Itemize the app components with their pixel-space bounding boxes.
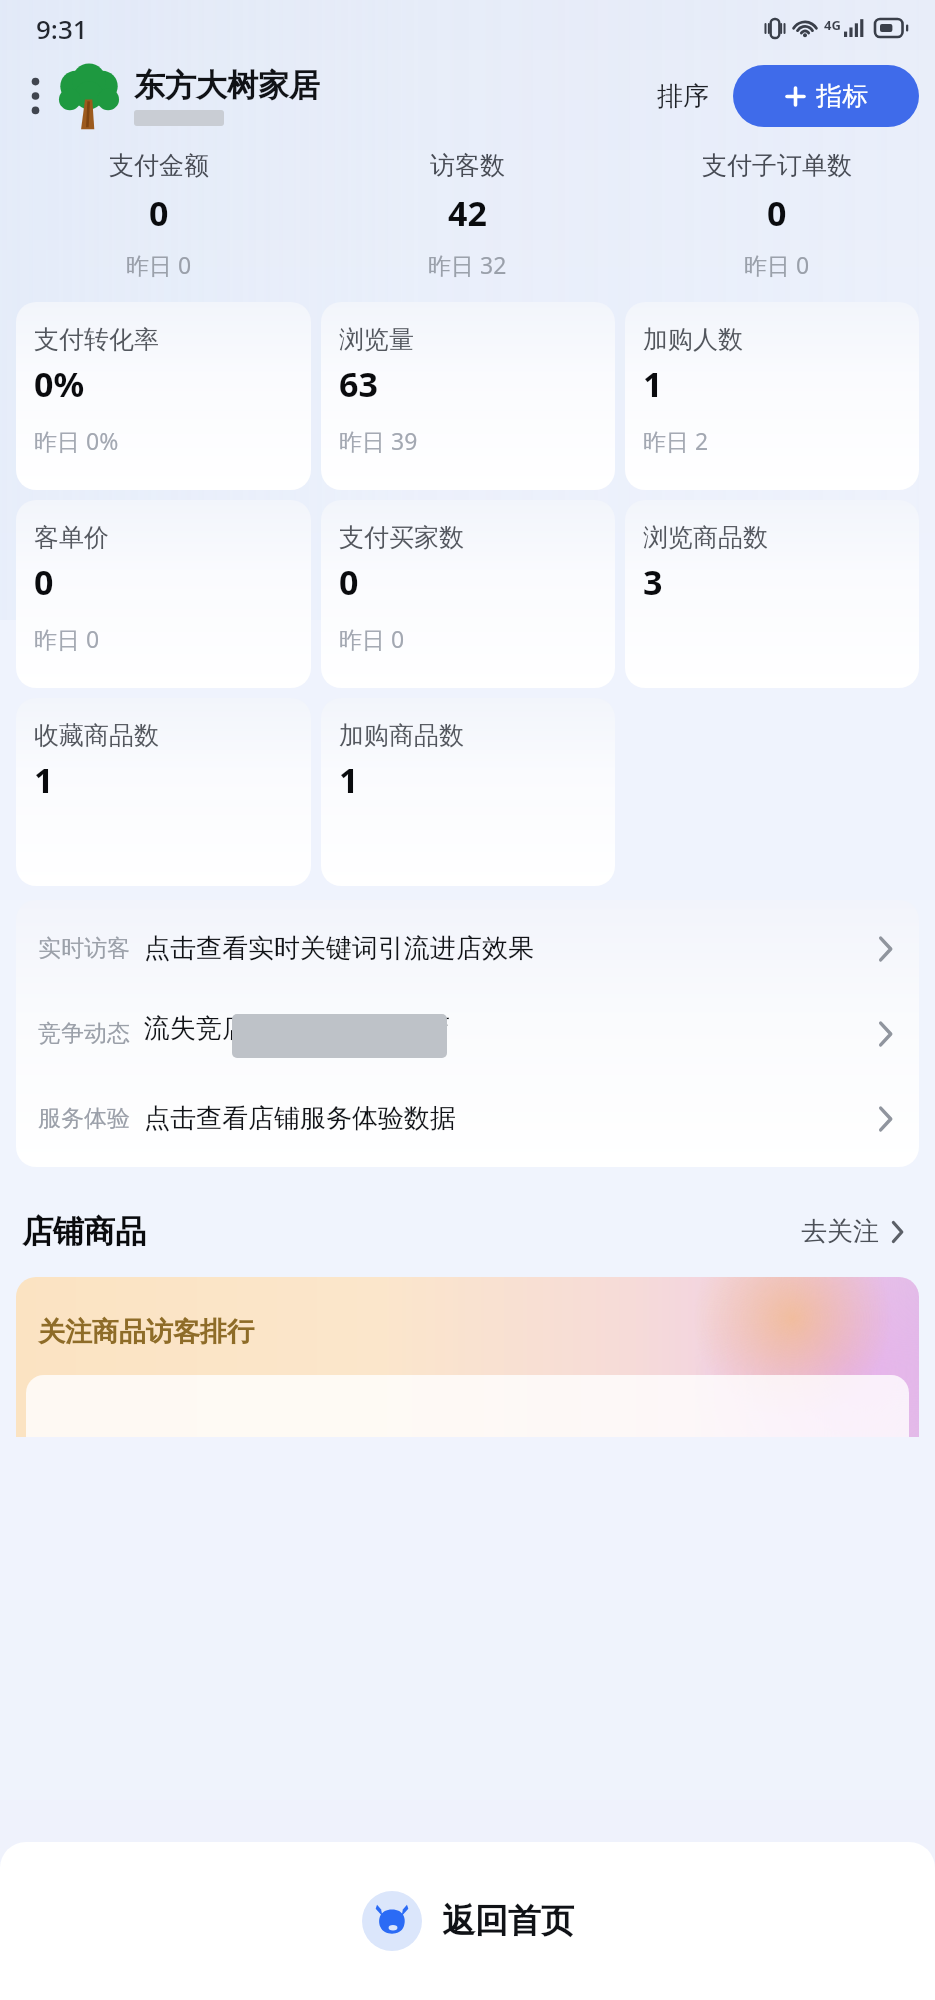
staticText: 支付买家数 (339, 522, 464, 553)
button[interactable]: 收藏商品数 (16, 698, 311, 886)
staticText: 流失竞店 (144, 1012, 248, 1045)
staticText: 支付子订单数 (702, 150, 852, 181)
staticText: 昨日 0 (339, 623, 405, 654)
staticText: 0 (149, 190, 169, 236)
staticText: 0 (34, 559, 54, 605)
staticText: 昨日 32 (428, 249, 507, 280)
button[interactable]: 支付买家数 (321, 500, 615, 688)
staticText: 客单价 (34, 522, 109, 553)
staticText: 0% (34, 361, 85, 407)
staticText: 关注商品访客排行 (38, 1315, 254, 1349)
staticText: 昨日 0 (34, 623, 100, 654)
button[interactable]: More options (18, 68, 52, 124)
staticText: 实时访客 (38, 934, 130, 963)
button[interactable]: 支付金额 (4, 150, 313, 280)
button[interactable]: 指标 (733, 65, 919, 127)
staticText: 0 (339, 559, 359, 605)
button[interactable]: 支付子订单数 (622, 150, 931, 280)
button[interactable]: 竞争动态 (16, 991, 919, 1076)
staticText: 视店 (398, 1012, 450, 1045)
staticText: 去关注 (801, 1215, 879, 1248)
button[interactable]: 浏览量 (321, 302, 615, 490)
staticText: 63 (339, 361, 378, 407)
staticText: 返回首页 (442, 1900, 574, 1942)
button[interactable]: 访客数 (313, 150, 622, 280)
staticText: 3 (643, 559, 663, 605)
staticText: 收藏商品数 (34, 720, 159, 751)
staticText: 点击查看实时关键词引流进店效果 (144, 932, 534, 965)
button[interactable]: 实时访客 (16, 906, 919, 991)
button[interactable]: 服务体验 (16, 1076, 919, 1161)
button[interactable]: 关注商品访客排行 (16, 1277, 919, 1437)
button[interactable]: 排序 (647, 70, 719, 123)
staticText: 访客数 (430, 150, 505, 181)
staticText: 9:31 (36, 11, 88, 46)
staticText: 支付转化率 (34, 324, 159, 355)
staticText: 东方大树家居 (134, 66, 320, 105)
staticText: 浏览量 (339, 324, 414, 355)
staticText: 1 (643, 361, 663, 407)
staticText: 1 (34, 757, 54, 803)
staticText: 昨日 0% (34, 425, 119, 456)
staticText: 支付金额 (109, 150, 209, 181)
button[interactable]: 加购商品数 (321, 698, 615, 886)
staticText: 排序 (657, 80, 709, 113)
staticText: 0 (767, 190, 787, 236)
staticText: 点击查看店铺服务体验数据 (144, 1102, 456, 1135)
button[interactable]: 去关注 (795, 1209, 913, 1254)
button[interactable]: 浏览商品数 (625, 500, 919, 688)
button[interactable]: 支付转化率 (16, 302, 311, 490)
staticText: 42 (448, 190, 487, 236)
staticText: 竞争动态 (38, 1019, 130, 1048)
staticText: 浏览商品数 (643, 522, 768, 553)
staticText: 昨日 2 (643, 425, 709, 456)
staticText: 昨日 0 (744, 249, 810, 280)
button[interactable]: 加购人数 (625, 302, 919, 490)
staticText: 店铺商品 (22, 1212, 146, 1251)
staticText: 4G (824, 16, 841, 34)
staticText: 加购人数 (643, 324, 743, 355)
staticText: 昨日 0 (126, 249, 192, 280)
button[interactable]: 返回首页 (362, 1891, 574, 1951)
staticText: 加购商品数 (339, 720, 464, 751)
staticText: 昨日 39 (339, 425, 418, 456)
staticText: 指标 (816, 80, 868, 113)
staticText: 服务体验 (38, 1104, 130, 1133)
staticText: 1 (339, 757, 359, 803)
button[interactable]: 客单价 (16, 500, 311, 688)
